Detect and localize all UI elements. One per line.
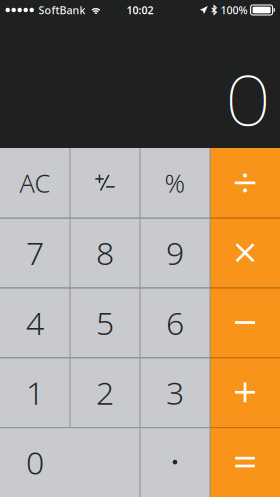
button[interactable]: Plus xyxy=(210,357,280,427)
staticText: 1 xyxy=(26,371,44,414)
button[interactable]: Multiply xyxy=(210,218,280,288)
button[interactable]: Equals xyxy=(210,427,280,497)
staticText: 4 xyxy=(26,301,44,344)
staticText: % xyxy=(164,166,185,200)
button[interactable]: Decimal point xyxy=(140,427,210,497)
staticText: 3 xyxy=(166,371,184,414)
button[interactable]: Plus minus xyxy=(70,148,140,218)
button[interactable]: All clear xyxy=(0,148,70,218)
staticText: 0 xyxy=(224,60,272,144)
button[interactable]: 9 xyxy=(140,218,210,288)
button[interactable]: Minus xyxy=(210,288,280,357)
button[interactable]: 4 xyxy=(0,288,70,357)
staticText: SoftBank xyxy=(38,3,85,17)
staticText: 7 xyxy=(26,231,44,274)
staticText: 2 xyxy=(96,371,114,414)
button[interactable]: 1 xyxy=(0,357,70,427)
staticText: AC xyxy=(19,166,50,200)
button[interactable]: Divide xyxy=(210,148,280,218)
button[interactable]: 3 xyxy=(140,357,210,427)
staticText: 8 xyxy=(96,231,114,274)
button[interactable]: Percent xyxy=(140,148,210,218)
button[interactable]: 2 xyxy=(70,357,140,427)
button[interactable]: 8 xyxy=(70,218,140,288)
staticText: 10:02 xyxy=(126,3,153,17)
staticText: 100% xyxy=(221,3,248,17)
staticText: 6 xyxy=(166,301,184,344)
staticText: 9 xyxy=(166,231,184,274)
button[interactable]: 0 xyxy=(0,427,140,497)
button[interactable]: 5 xyxy=(70,288,140,357)
staticText: 5 xyxy=(96,301,114,344)
staticText: 0 xyxy=(26,441,44,483)
button[interactable]: 7 xyxy=(0,218,70,288)
button[interactable]: 6 xyxy=(140,288,210,357)
